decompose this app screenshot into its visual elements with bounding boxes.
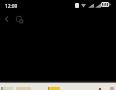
staticText: 12:09 — [5, 3, 18, 10]
button[interactable]: Back — [0, 12, 13, 25]
button[interactable]: Picture in picture — [13, 13, 26, 26]
